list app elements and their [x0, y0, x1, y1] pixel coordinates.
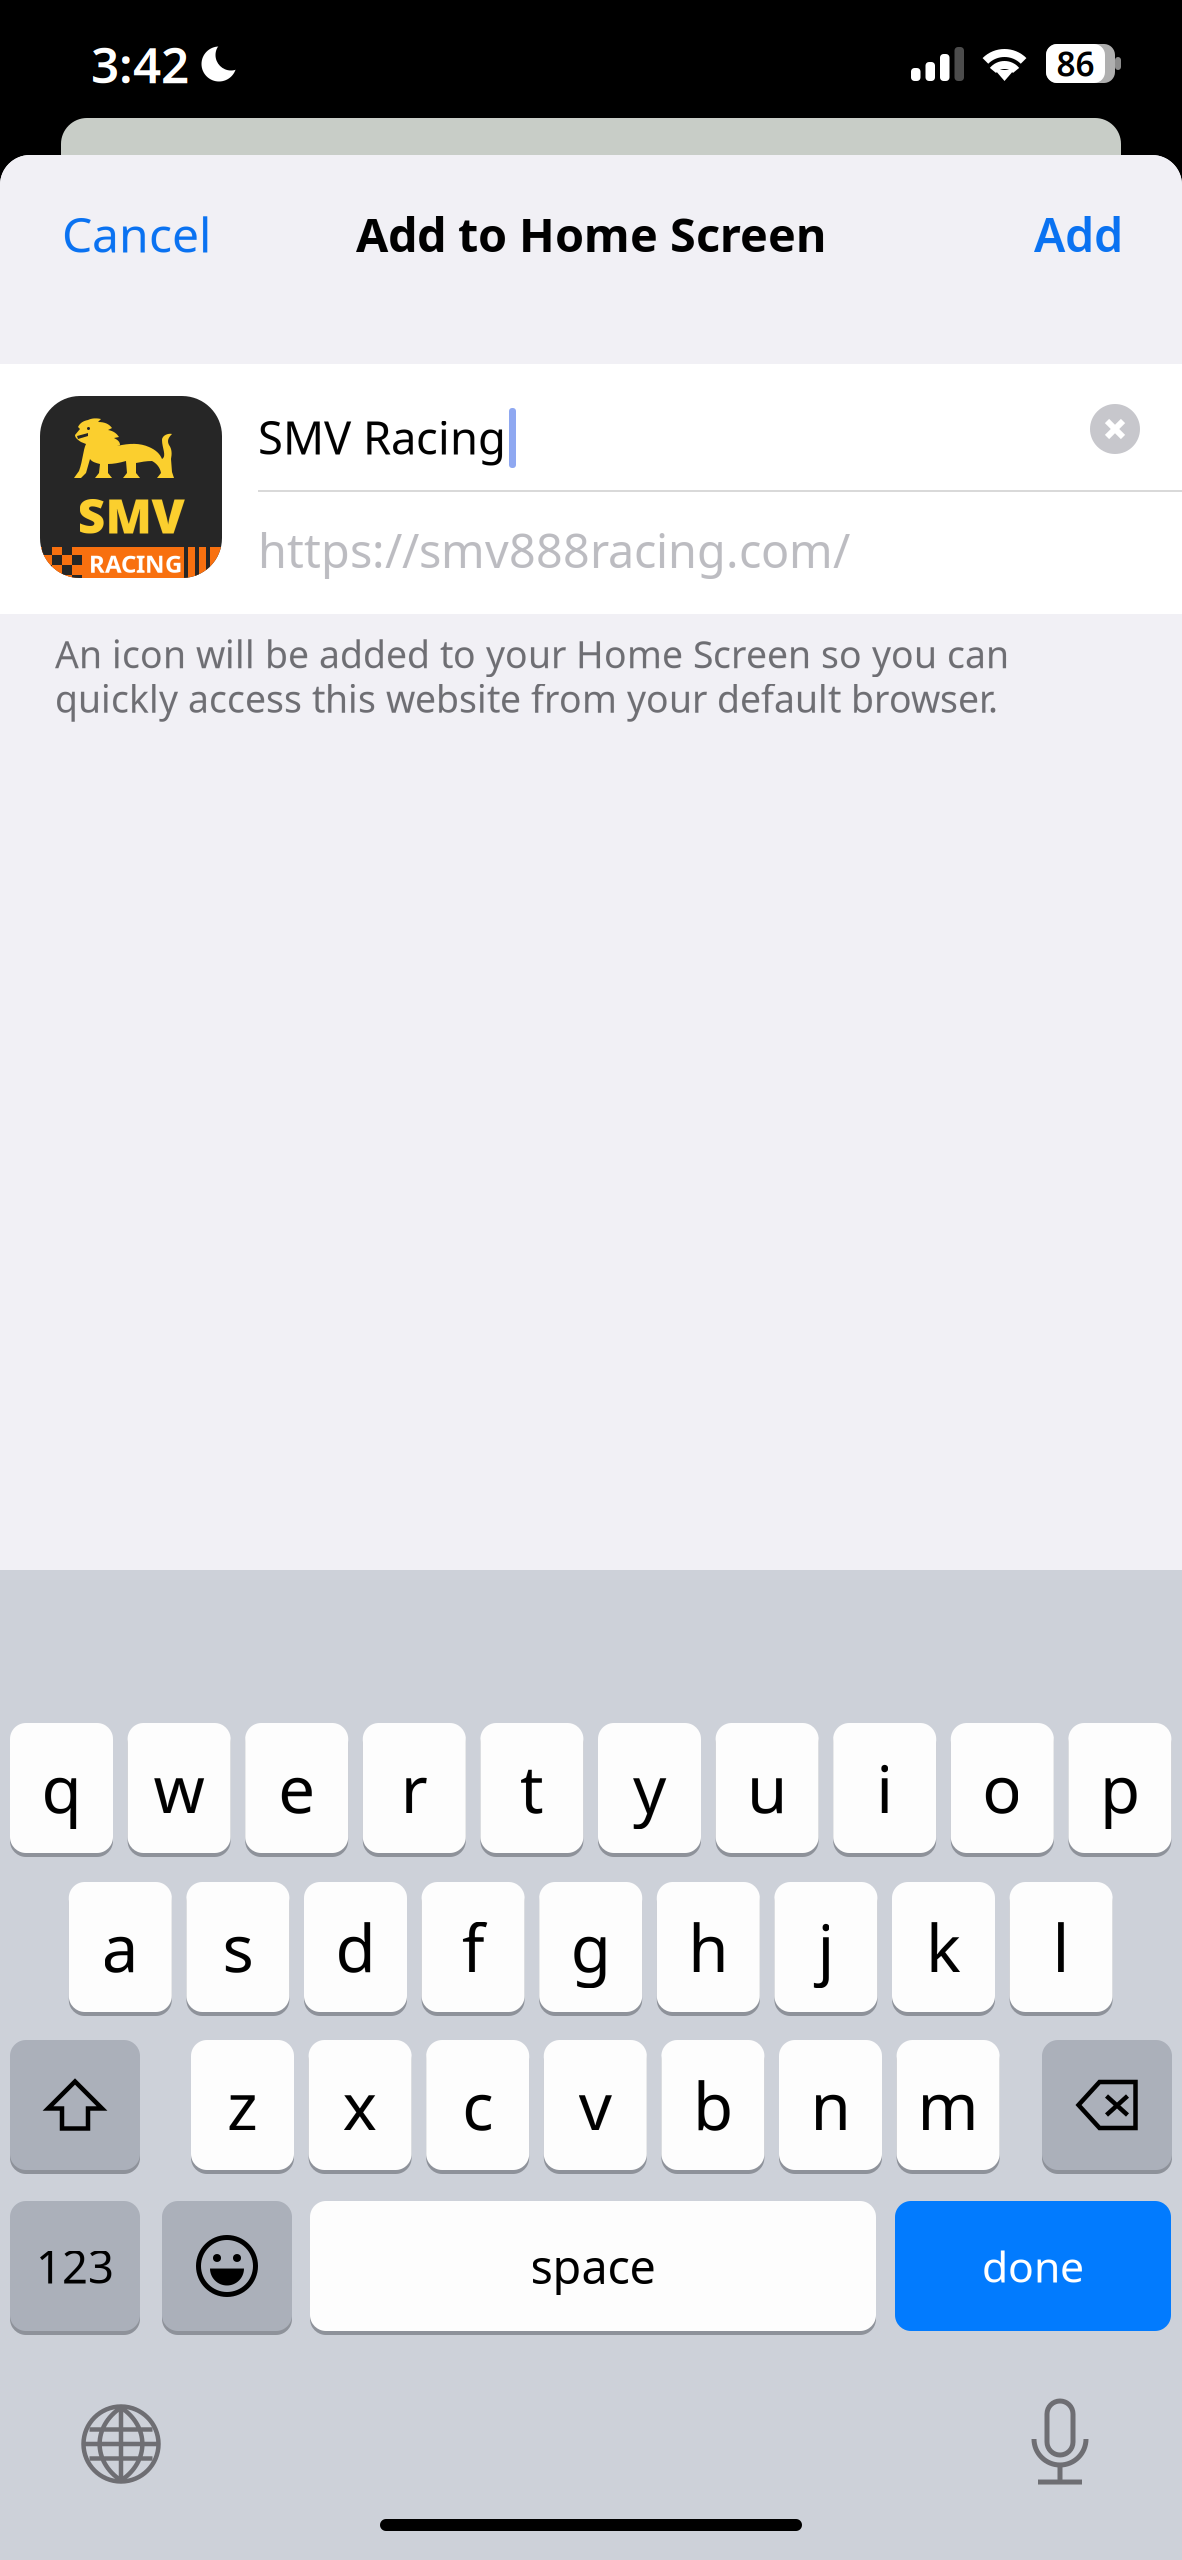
button[interactable]: Next keyboard	[83, 2406, 159, 2482]
staticText: s	[222, 1904, 253, 1990]
staticText: SMV Racing	[258, 407, 506, 467]
staticText: g	[571, 1904, 611, 1990]
button[interactable]: n	[779, 2040, 882, 2174]
staticText: 123	[36, 2236, 114, 2296]
button[interactable]: e	[245, 1723, 348, 1857]
staticText: n	[810, 2062, 850, 2148]
staticText: 86	[1056, 41, 1094, 86]
staticText: j	[817, 1904, 834, 1990]
button[interactable]: k	[892, 1882, 995, 2016]
staticText: 3:42	[91, 31, 189, 97]
staticText: d	[335, 1904, 375, 1990]
button[interactable]: Add	[912, 155, 1182, 313]
staticText: h	[688, 1904, 728, 1990]
staticText: b	[693, 2062, 733, 2148]
staticText: w	[154, 1745, 205, 1831]
button[interactable]: h	[657, 1882, 760, 2016]
button[interactable]: j	[774, 1882, 877, 2016]
staticText: r	[401, 1745, 428, 1831]
button[interactable]: Shift	[10, 2040, 140, 2174]
button[interactable]: q	[10, 1723, 113, 1857]
button[interactable]: x	[309, 2040, 412, 2174]
staticText: q	[41, 1745, 81, 1831]
staticText: RACING	[89, 548, 182, 579]
staticText: m	[918, 2062, 979, 2148]
button[interactable]: d	[304, 1882, 407, 2016]
button[interactable]: Dictation	[1033, 2401, 1087, 2485]
staticText: x	[343, 2062, 378, 2148]
button[interactable]: b	[661, 2040, 764, 2174]
button[interactable]: w	[128, 1723, 231, 1857]
staticText: t	[520, 1745, 544, 1831]
staticText: v	[579, 2062, 612, 2148]
button[interactable]: f	[422, 1882, 525, 2016]
staticText: c	[462, 2062, 493, 2148]
staticText: Cancel	[62, 202, 211, 266]
staticText: z	[227, 2062, 258, 2148]
button[interactable]: space	[310, 2201, 876, 2335]
button[interactable]: m	[897, 2040, 1000, 2174]
staticText: done	[982, 2238, 1084, 2294]
button[interactable]: Cancel	[0, 155, 330, 313]
staticText: a	[102, 1904, 139, 1990]
button[interactable]: p	[1068, 1723, 1171, 1857]
staticText: Add	[1034, 203, 1123, 265]
staticText: k	[926, 1904, 961, 1990]
staticText: https://smv888racing.com/	[258, 519, 850, 581]
staticText: o	[982, 1745, 1022, 1831]
staticText: SMV	[77, 483, 184, 547]
staticText: space	[530, 2235, 655, 2297]
button[interactable]: c	[426, 2040, 529, 2174]
button[interactable]: done	[895, 2201, 1171, 2335]
button[interactable]: 123	[10, 2201, 140, 2335]
button[interactable]: l	[1010, 1882, 1113, 2016]
staticText: e	[278, 1745, 315, 1831]
staticText: p	[1100, 1745, 1140, 1831]
button[interactable]: t	[480, 1723, 583, 1857]
button[interactable]: i	[833, 1723, 936, 1857]
button[interactable]: u	[716, 1723, 819, 1857]
button[interactable]: y	[598, 1723, 701, 1857]
staticText: y	[633, 1745, 666, 1831]
button[interactable]: s	[186, 1882, 289, 2016]
button[interactable]: Clear text	[1067, 381, 1163, 477]
button[interactable]: g	[539, 1882, 642, 2016]
button[interactable]: v	[544, 2040, 647, 2174]
button[interactable]: z	[191, 2040, 294, 2174]
button[interactable]: a	[69, 1882, 172, 2016]
button[interactable]: Emoji	[162, 2201, 292, 2335]
staticText: u	[747, 1745, 787, 1831]
button[interactable]: o	[951, 1723, 1054, 1857]
staticText: Add to Home Screen	[356, 203, 826, 265]
staticText: An icon will be added to your Home Scree…	[55, 629, 1009, 723]
button[interactable]: r	[363, 1723, 466, 1857]
staticText: f	[462, 1904, 484, 1990]
staticText: i	[876, 1745, 893, 1831]
staticText: l	[1053, 1904, 1070, 1990]
button[interactable]: Delete	[1042, 2040, 1172, 2174]
